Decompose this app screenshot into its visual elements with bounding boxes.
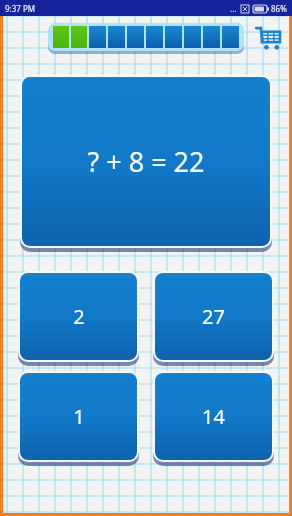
staticText: 27 bbox=[202, 303, 225, 330]
button[interactable]: ? + 8 = 22 bbox=[20, 75, 272, 248]
button[interactable]: 27 bbox=[153, 271, 274, 362]
button[interactable]: Shop bbox=[250, 20, 286, 56]
staticText: ... bbox=[230, 3, 237, 14]
staticText: 14 bbox=[202, 403, 225, 430]
staticText: 2 bbox=[73, 303, 85, 330]
staticText: ? + 8 = 22 bbox=[87, 143, 205, 180]
staticText: 9:37 PM bbox=[5, 3, 36, 14]
button[interactable]: 2 bbox=[18, 271, 139, 362]
staticText: 86% bbox=[271, 3, 287, 14]
staticText: 1 bbox=[73, 403, 85, 430]
button[interactable]: 1 bbox=[18, 371, 139, 462]
button[interactable]: 14 bbox=[153, 371, 274, 462]
